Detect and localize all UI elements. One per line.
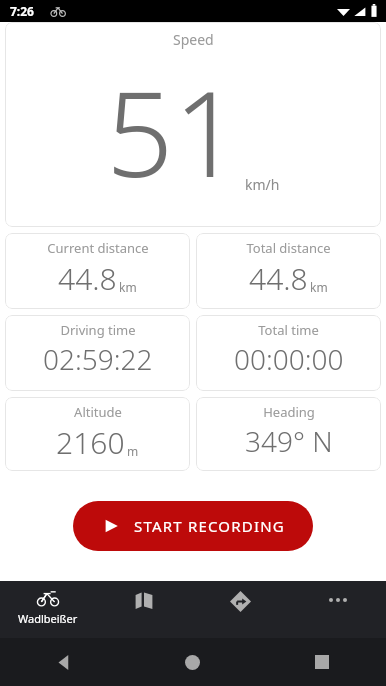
button[interactable]: Altitude [5,397,190,471]
staticText: 44.8 [58,258,117,299]
button[interactable]: Wadlbeißer [0,581,96,638]
button[interactable]: Speed [5,22,381,227]
staticText: Total distance [246,239,331,257]
staticText: Current distance [47,239,149,257]
staticText: km [119,279,137,295]
button[interactable]: Total distance [196,233,381,309]
staticText: Driving time [60,321,136,339]
button[interactable]: More options [289,581,386,638]
staticText: 00:00:00 [234,340,344,378]
button[interactable]: Driving time [5,315,190,391]
staticText: km/h [245,175,280,194]
staticText: 51 [106,51,241,212]
staticText: Wadlbeißer [18,611,78,626]
staticText: Speed [173,30,214,49]
button[interactable]: Map [96,581,192,638]
staticText: 349° N [245,422,333,460]
button[interactable]: Heading [196,397,381,471]
staticText: START RECORDING [134,516,285,536]
staticText: 7:26 [10,3,34,19]
button[interactable]: Current distance [5,233,190,309]
staticText: m [127,443,139,459]
button[interactable]: Total time [196,315,381,391]
button[interactable]: START RECORDING [73,501,313,551]
staticText: 02:59:22 [43,340,153,378]
button[interactable]: Back [0,638,128,686]
staticText: km [310,279,328,295]
staticText: Total time [258,321,319,339]
staticText: Heading [263,403,315,421]
staticText: Altitude [74,403,122,421]
staticText: 2160 [56,422,125,463]
button[interactable]: Directions [192,581,289,638]
button[interactable]: Recent apps [257,638,386,686]
staticText: 44.8 [249,258,308,299]
button[interactable]: Home [128,638,257,686]
